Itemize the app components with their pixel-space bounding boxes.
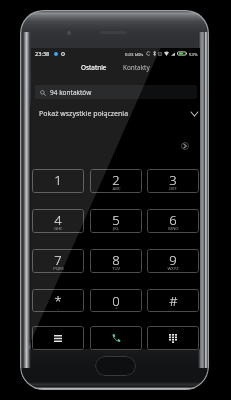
staticText: WXYZ: [167, 266, 179, 272]
staticText: DEF: [169, 186, 177, 192]
staticText: 3: [169, 171, 177, 189]
staticText: 6: [169, 211, 177, 229]
staticText: ABC: [112, 186, 121, 192]
staticText: Ostatnie: [81, 63, 107, 72]
button[interactable]: 1: [32, 169, 84, 193]
button[interactable]: 9: [147, 249, 199, 273]
staticText: GHI: [54, 226, 62, 232]
staticText: ,: [57, 305, 59, 311]
staticText: TUV: [112, 266, 120, 272]
staticText: JKL: [113, 226, 119, 232]
button[interactable]: 7: [32, 249, 84, 273]
button[interactable]: 94 kontaktów: [35, 85, 197, 99]
staticText: 2: [112, 171, 120, 189]
button[interactable]: 4: [32, 209, 84, 233]
button[interactable]: Kontakty: [117, 60, 156, 75]
button[interactable]: Dialpad: [147, 326, 199, 350]
button[interactable]: Ostatnie: [75, 60, 113, 75]
staticText: 5: [112, 211, 120, 229]
button[interactable]: 0: [90, 289, 142, 312]
button[interactable]: Home: [95, 356, 136, 376]
staticText: MNO: [168, 226, 179, 232]
button[interactable]: 5: [90, 209, 142, 233]
staticText: 8: [112, 251, 120, 269]
button[interactable]: 2: [90, 169, 142, 193]
staticText: #: [169, 292, 178, 310]
staticText: 94 kontaktów: [50, 88, 92, 97]
button[interactable]: *: [32, 289, 84, 312]
button[interactable]: 8: [90, 249, 142, 273]
staticText: 1: [54, 171, 62, 189]
button[interactable]: Expand dialpad: [181, 142, 189, 150]
button[interactable]: Call: [90, 326, 142, 350]
staticText: +: [115, 305, 118, 311]
staticText: 23:38: [35, 50, 50, 58]
staticText: 4: [54, 211, 62, 229]
staticText: 7: [54, 251, 62, 269]
staticText: Pokaż wszystkie połączenia: [39, 109, 129, 119]
button[interactable]: #: [147, 289, 199, 312]
button[interactable]: 6: [147, 209, 199, 233]
staticText: *: [54, 292, 62, 310]
staticText: 53%: [189, 51, 198, 57]
button[interactable]: Menu: [32, 326, 84, 350]
staticText: 0.03 kB/s: [125, 51, 144, 57]
staticText: PQRS: [53, 266, 64, 272]
button[interactable]: Pokaż wszystkie połączenia: [31, 104, 200, 124]
button[interactable]: 3: [147, 169, 199, 193]
staticText: 9: [169, 251, 177, 269]
staticText: Kontakty: [123, 63, 150, 72]
staticText: 0: [112, 292, 120, 310]
